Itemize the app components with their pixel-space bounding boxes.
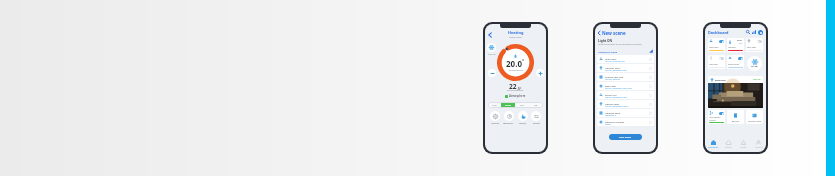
button[interactable]: Cool off: [487, 43, 496, 56]
button[interactable]: Kitchen's area: [746, 110, 763, 124]
button[interactable]: Shutter left side: [597, 73, 654, 81]
button[interactable]: Increase: [536, 69, 544, 77]
button[interactable]: Main light: [597, 55, 654, 63]
button[interactable]: Save scene: [609, 134, 642, 140]
staticText: Actions in scene: [598, 50, 618, 53]
button[interactable]: Cool: [488, 102, 501, 108]
staticText: Warm: [505, 104, 512, 107]
staticText: Dashboard: [708, 30, 729, 35]
staticText: Automat: [491, 122, 500, 125]
staticText: Rooms: [725, 146, 732, 149]
button[interactable]: Warm: [501, 102, 515, 108]
staticText: Off: [534, 104, 538, 107]
button[interactable]: Account: [751, 140, 766, 149]
staticText: Garden light: [605, 102, 620, 105]
staticText: Detector hallway: [605, 120, 625, 123]
staticText: Lorem ipsum dolor sit, for the scene and…: [598, 43, 642, 46]
staticText: Wall light: [709, 63, 718, 66]
button[interactable]: Bedroom: [708, 76, 763, 108]
button[interactable]: Setting: [531, 111, 541, 125]
button[interactable]: Edit: [649, 49, 653, 53]
button[interactable]: Manual: [518, 111, 528, 125]
staticText: Setpoint 23°C: [605, 114, 617, 116]
staticText: Hallway light: [605, 66, 620, 69]
staticText: Turn Off, Time 30s: [605, 78, 621, 80]
staticText: Turn ON, lamp 50%, 30s: [605, 60, 625, 62]
staticText: Turn off: [753, 78, 761, 81]
button[interactable]: Temporary: [503, 111, 514, 125]
staticText: Bedroom: [715, 78, 726, 81]
staticText: 22: [509, 82, 517, 91]
staticText: All off: [751, 65, 758, 68]
button[interactable]: Back: [487, 32, 493, 38]
staticText: RGB Light: [605, 84, 617, 87]
button[interactable]: Scenes: [736, 140, 751, 149]
button[interactable]: Spot light: [746, 38, 763, 52]
button[interactable]: Statistics: [752, 30, 756, 34]
staticText: °: [522, 58, 525, 65]
staticText: Save scene: [619, 136, 632, 139]
button[interactable]: Aircondition: [708, 110, 725, 124]
staticText: Turn ON, Brightness 100%, C: [605, 105, 629, 107]
button[interactable]: Decrease: [488, 69, 496, 77]
button[interactable]: Automat: [490, 111, 500, 125]
button[interactable]: White Led: [597, 91, 654, 99]
staticText: Dashboard: [708, 146, 719, 149]
staticText: Aircondition: [709, 116, 721, 119]
staticText: 20.0: [506, 58, 522, 69]
staticText: Main light: [605, 57, 617, 60]
button[interactable]: Hot: [515, 102, 529, 108]
staticText: Account: [755, 146, 763, 149]
button[interactable]: Profile: [758, 30, 763, 35]
staticText: Light ON: [598, 39, 613, 43]
button[interactable]: Hallway light: [597, 64, 654, 72]
button[interactable]: Wall light: [708, 55, 725, 69]
button[interactable]: Balcony: [727, 110, 744, 124]
staticText: Cool off: [488, 53, 496, 56]
staticText: Hot: [520, 104, 524, 107]
staticText: actual temperature: [507, 89, 524, 91]
staticText: set temperature: [509, 69, 523, 71]
staticText: .5°: [517, 86, 522, 91]
staticText: Heating: [508, 30, 524, 35]
staticText: Temporary: [503, 122, 514, 125]
button[interactable]: Heating zone: [597, 109, 654, 117]
staticText: Heating: [728, 46, 736, 49]
staticText: New scene: [602, 30, 626, 36]
button[interactable]: Front break: [727, 55, 744, 69]
staticText: Spot light: [747, 46, 757, 49]
button[interactable]: Search: [746, 30, 750, 34]
staticText: Enable: [605, 123, 611, 125]
staticText: Main light: [709, 46, 719, 49]
button[interactable]: Main light: [708, 38, 725, 52]
button[interactable]: New scene: [597, 30, 626, 36]
staticText: White Led: [605, 93, 617, 96]
staticText: Heating zone: [605, 111, 621, 114]
button[interactable]: 22.5°: [727, 38, 744, 52]
staticText: 22.5°: [737, 39, 743, 42]
staticText: Shutter left side: [605, 75, 624, 78]
button[interactable]: RGB Light: [597, 82, 654, 90]
staticText: Balcony: [728, 120, 743, 123]
button[interactable]: Rooms: [721, 140, 736, 149]
staticText: Turn ON, Brightness 100%: [605, 69, 627, 71]
button[interactable]: All off: [747, 56, 762, 71]
staticText: Manual: [519, 122, 527, 125]
staticText: Front break: [728, 63, 739, 66]
button[interactable]: Detector hallway: [597, 118, 654, 126]
button[interactable]: Garden light: [597, 100, 654, 108]
staticText: Atmosphere: [509, 94, 526, 98]
staticText: 23°C: [739, 42, 743, 44]
staticText: Setting: [533, 122, 540, 125]
button[interactable]: Dashboard: [705, 140, 721, 149]
staticText: Turn ON, Brightness 100%, Color: [605, 87, 632, 89]
staticText: Turn ON, Brightness 100%: [605, 96, 627, 98]
staticText: Living room: [509, 36, 522, 39]
staticText: Scenes: [740, 146, 747, 149]
staticText: Cool: [492, 104, 497, 107]
button[interactable]: Off: [529, 102, 543, 108]
staticText: Humidity: [709, 119, 716, 121]
staticText: Kitchen's area: [747, 120, 762, 123]
